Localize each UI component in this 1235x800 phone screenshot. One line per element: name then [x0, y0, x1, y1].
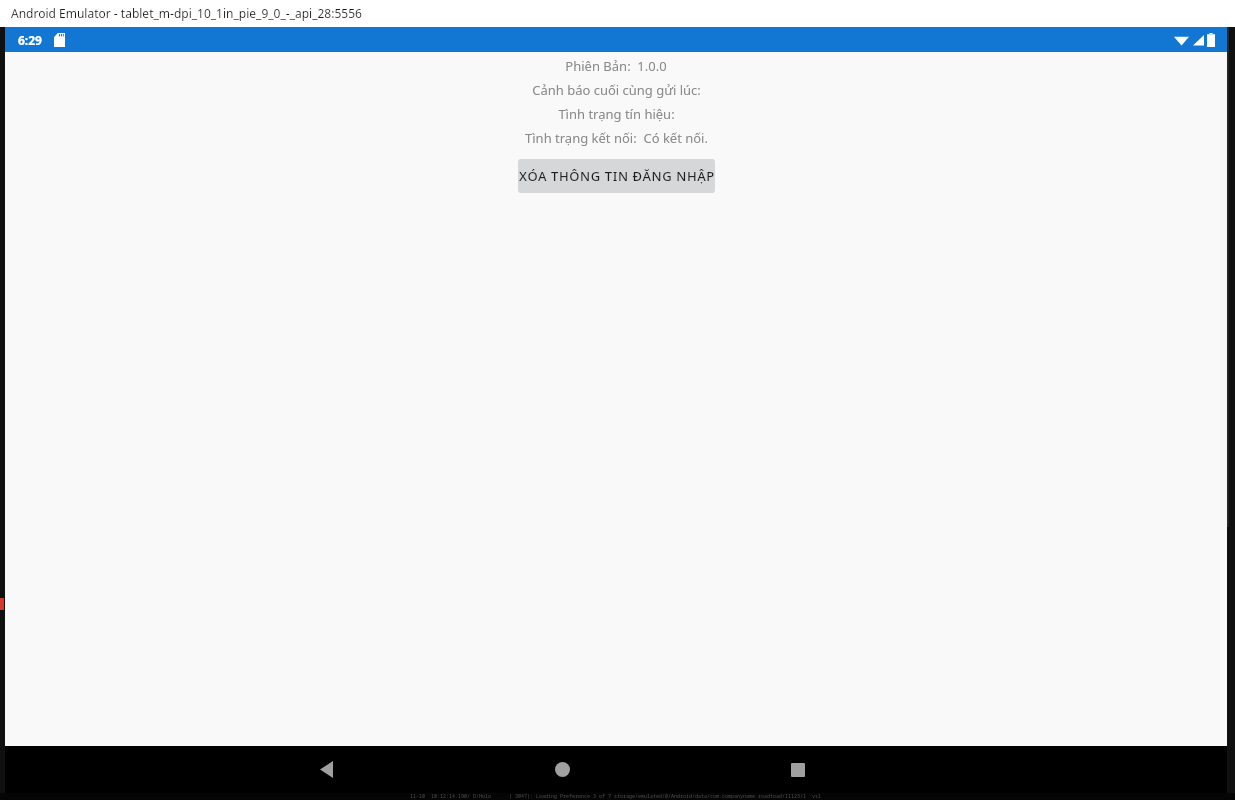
staticText: Cảnh báo cuối cùng gửi lúc:	[532, 81, 701, 99]
staticText: Android Emulator - tablet_m-dpi_10_1in_p…	[11, 5, 362, 21]
staticText: 6:29	[18, 32, 42, 48]
button[interactable]: Back	[300, 746, 352, 793]
staticText: Tình trạng kết nối: Có kết nối.	[525, 129, 708, 147]
staticText: Phiên Bản: 1.0.0	[565, 57, 667, 75]
button[interactable]: Home	[536, 746, 588, 793]
staticText: 11-10 10:12:14.190/ D/Holo ( 3047): Load…	[410, 793, 822, 800]
staticText: Tình trạng tín hiệu:	[558, 105, 675, 123]
staticText: XÓA THÔNG TIN ĐĂNG NHẬP	[519, 167, 715, 185]
button[interactable]: XÓA THÔNG TIN ĐĂNG NHẬP	[518, 159, 715, 193]
button[interactable]: Recent apps	[772, 746, 824, 793]
